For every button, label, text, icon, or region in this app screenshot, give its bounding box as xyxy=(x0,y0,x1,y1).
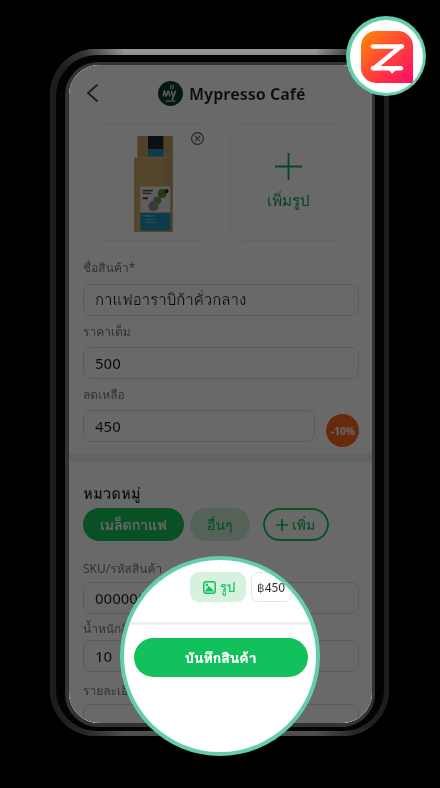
staticText: รายละเอียด xyxy=(83,681,144,700)
staticText: 450 xyxy=(95,416,121,436)
button[interactable]: อื่นๆ xyxy=(190,508,250,541)
button[interactable]: 450 xyxy=(83,410,315,442)
staticText: ชื่อสินค้า* xyxy=(83,258,136,277)
button[interactable]: Remove photo xyxy=(191,132,204,145)
staticText: เมล็ดกาแฟ xyxy=(100,514,167,536)
button[interactable]: Back xyxy=(77,78,107,108)
staticText: Mypresso Café xyxy=(189,83,306,105)
button[interactable]: เมล็ดกาแฟ xyxy=(83,508,184,541)
staticText: ฿450 xyxy=(257,579,286,595)
button[interactable]: -10% xyxy=(326,414,359,447)
button[interactable]: กาแฟอาราบิก้าคั่วกลาง xyxy=(83,284,359,316)
button[interactable]: เพิ่มรูป xyxy=(230,124,347,241)
staticText: บันทึกสินค้า xyxy=(185,647,257,669)
button[interactable]: บันทึกสินค้า xyxy=(134,638,308,677)
button[interactable]: 500 xyxy=(83,347,359,379)
button[interactable]: Zort app logo xyxy=(346,16,426,96)
button[interactable]: รูป xyxy=(190,572,246,602)
staticText: อื่นๆ xyxy=(207,514,233,536)
button[interactable] xyxy=(83,704,359,723)
staticText: 10 xyxy=(95,646,113,666)
staticText: น้ำหนักสินค้า xyxy=(83,619,152,638)
staticText: SKU/รหัสสินค้า xyxy=(83,559,163,578)
staticText: เพิ่มรูป xyxy=(267,189,310,213)
staticText: 500 xyxy=(95,353,121,373)
staticText: รูป xyxy=(220,577,236,598)
staticText: 000000 xyxy=(95,588,147,608)
staticText: ราคาเต็ม xyxy=(83,322,131,341)
staticText: -10% xyxy=(331,424,355,438)
button[interactable]: 000000 xyxy=(83,582,359,614)
button[interactable]: ฿450 xyxy=(251,572,292,602)
staticText: หมวดหมู่ xyxy=(83,482,141,506)
button[interactable]: เพิ่ม xyxy=(263,508,329,541)
staticText: ลดเหลือ xyxy=(83,385,125,404)
staticText: เพิ่ม xyxy=(292,514,316,536)
staticText: กาแฟอาราบิก้าคั่วกลาง xyxy=(95,288,247,312)
button[interactable]: 10 xyxy=(83,640,359,672)
